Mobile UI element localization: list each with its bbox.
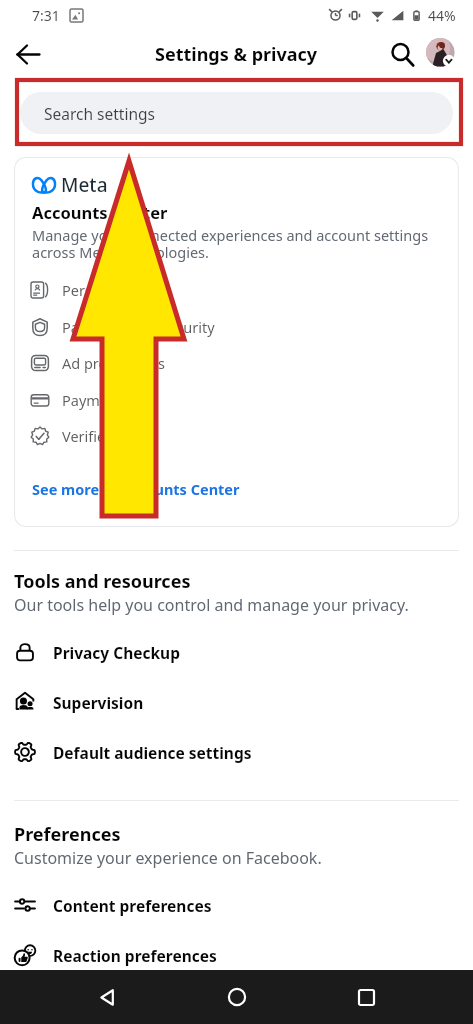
staticText: Tools and resources xyxy=(14,569,191,594)
button[interactable]: Password and security xyxy=(30,315,443,339)
button[interactable]: Privacy Checkup xyxy=(0,627,473,677)
staticText: Password and security xyxy=(62,317,215,337)
staticText: Privacy Checkup xyxy=(53,642,180,663)
staticText: See more in Accounts Center xyxy=(32,479,240,499)
button[interactable]: Home xyxy=(214,974,260,1020)
button[interactable]: Content preferences xyxy=(0,880,473,930)
button[interactable]: Back xyxy=(84,974,130,1020)
staticText: Payments xyxy=(62,390,130,410)
button[interactable]: Profile xyxy=(425,37,459,71)
staticText: Reaction preferences xyxy=(53,945,217,966)
staticText: Settings & privacy xyxy=(155,42,318,67)
staticText: Verified xyxy=(62,426,115,446)
staticText: Accounts Center xyxy=(32,201,168,223)
button[interactable]: Back xyxy=(8,34,48,74)
staticText: Content preferences xyxy=(53,895,212,916)
staticText: Supervision xyxy=(53,692,144,713)
button[interactable]: Recents xyxy=(343,974,389,1020)
staticText: Ad preferences xyxy=(62,353,165,373)
staticText: Preferences xyxy=(14,822,121,847)
staticText: Personal details xyxy=(62,280,171,300)
button[interactable]: Default audience settings xyxy=(0,727,473,777)
staticText: Customize your experience on Facebook. xyxy=(14,847,322,869)
staticText: Our tools help you control and manage yo… xyxy=(14,594,409,616)
button[interactable]: Reaction preferences xyxy=(0,930,473,980)
button[interactable]: Search settings xyxy=(20,92,453,134)
staticText: Manage your connected experiences and ac… xyxy=(32,225,435,262)
staticText: 7:31 xyxy=(32,6,60,25)
button[interactable]: Personal details xyxy=(30,278,443,302)
button[interactable]: Supervision xyxy=(0,677,473,727)
staticText: Default audience settings xyxy=(53,742,252,763)
staticText: Meta xyxy=(61,172,108,198)
button[interactable]: Search xyxy=(383,35,421,73)
button[interactable]: Payments xyxy=(30,388,443,412)
button[interactable]: Ad preferences xyxy=(30,351,443,375)
button[interactable]: See more in Accounts Center xyxy=(32,479,240,499)
staticText: Search settings xyxy=(44,103,155,124)
button[interactable]: Verified xyxy=(30,424,443,448)
staticText: 44% xyxy=(428,6,456,25)
